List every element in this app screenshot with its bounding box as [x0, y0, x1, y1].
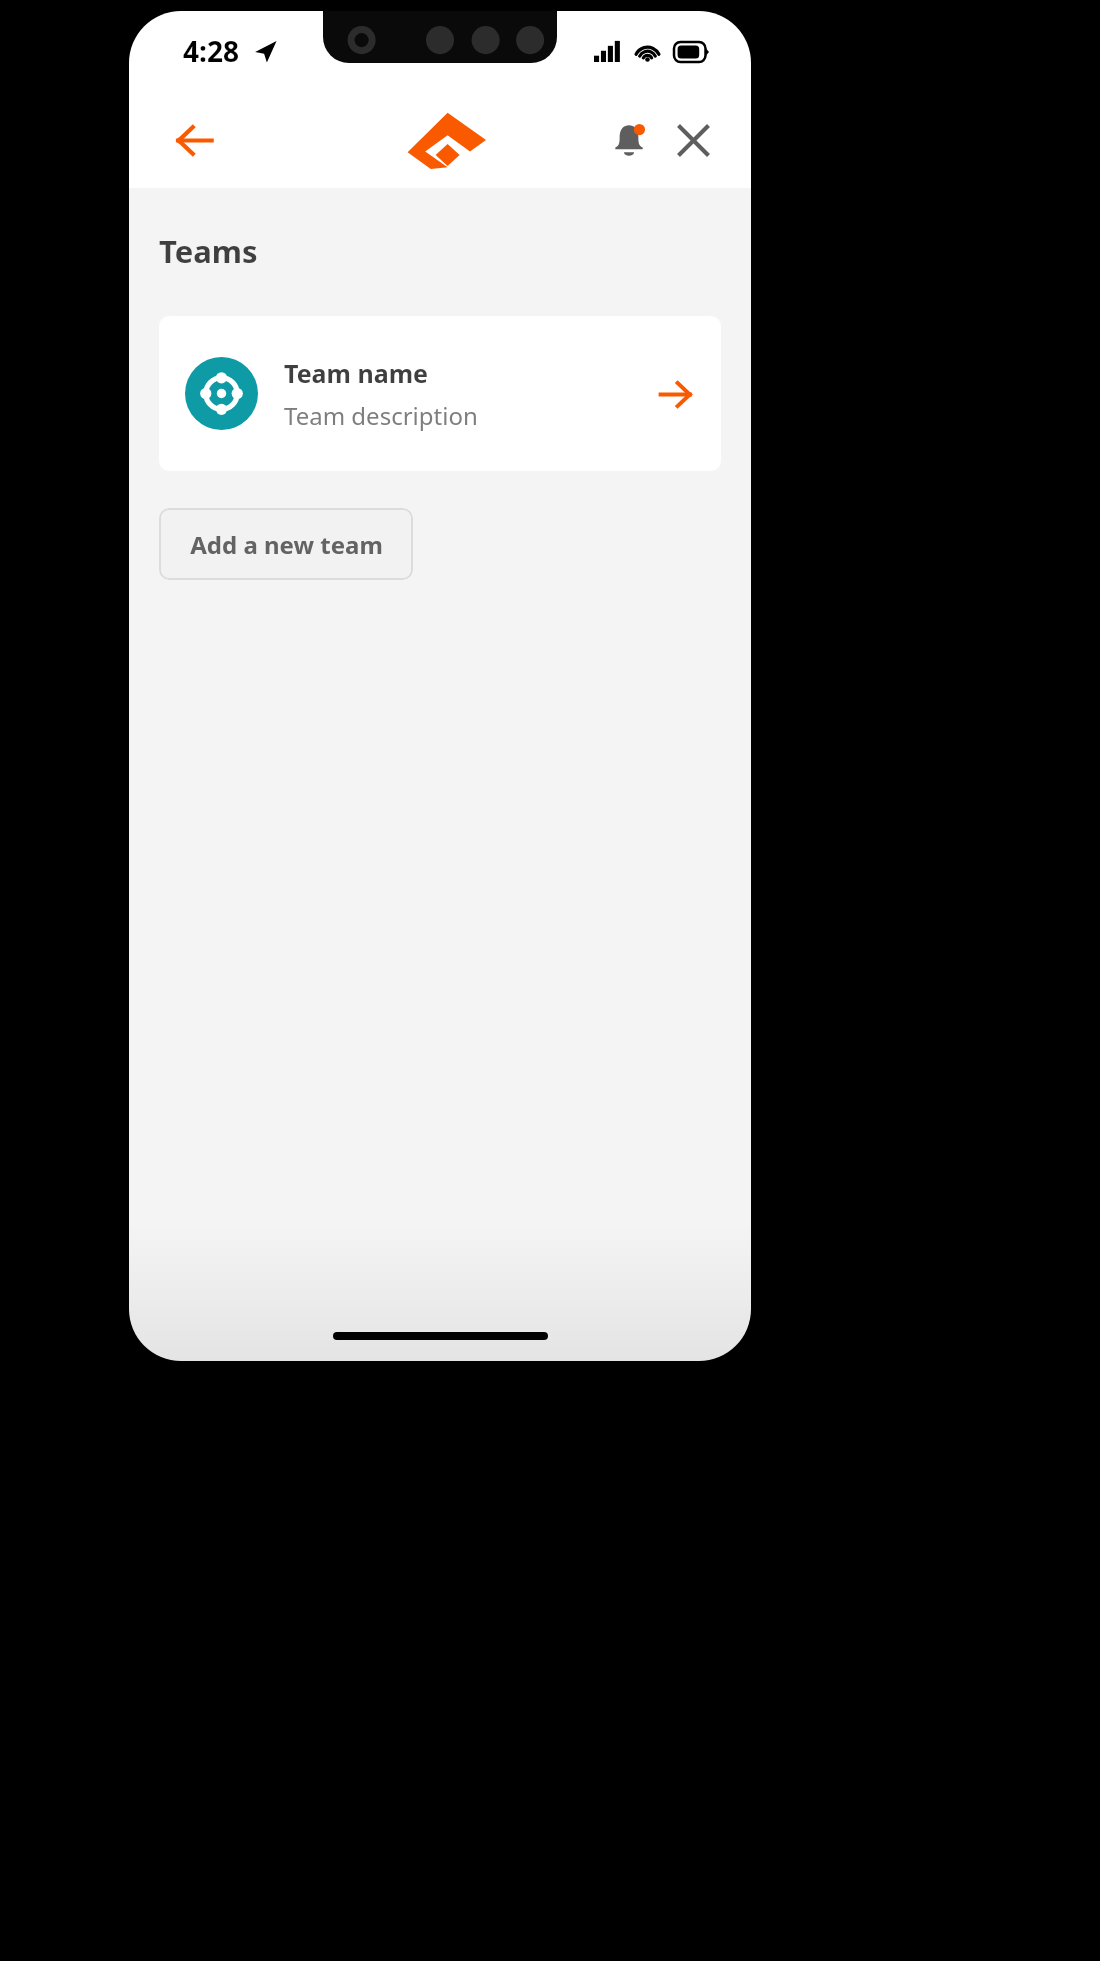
staticText: Team description: [284, 399, 478, 432]
staticText: Team name: [284, 356, 428, 390]
button[interactable]: Close: [661, 108, 725, 172]
button[interactable]: Notifications: [597, 108, 661, 172]
button[interactable]: Back: [163, 109, 225, 171]
staticText: 4:28: [183, 32, 239, 70]
button[interactable]: Add a new team: [159, 508, 413, 580]
button[interactable]: Team name: [159, 316, 721, 471]
staticText: Teams: [159, 230, 258, 272]
staticText: Add a new team: [190, 528, 383, 561]
other: Open team: [651, 370, 699, 418]
